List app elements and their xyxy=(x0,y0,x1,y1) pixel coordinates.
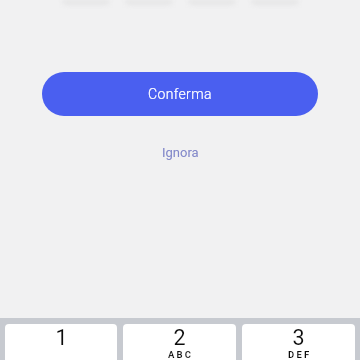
button[interactable]: 3 xyxy=(242,324,355,360)
button[interactable]: 1 xyxy=(5,324,117,360)
staticText: 2 xyxy=(173,325,186,350)
staticText: Conferma xyxy=(148,86,212,102)
button[interactable]: Conferma xyxy=(42,72,318,116)
staticText: Ignora xyxy=(162,145,199,160)
staticText: DEF xyxy=(288,349,312,360)
button[interactable]: 2 xyxy=(123,324,236,360)
staticText: 3 xyxy=(292,325,305,350)
staticText: ABC xyxy=(168,349,194,360)
button[interactable]: Ignora xyxy=(0,140,360,164)
staticText: 1 xyxy=(55,325,68,350)
